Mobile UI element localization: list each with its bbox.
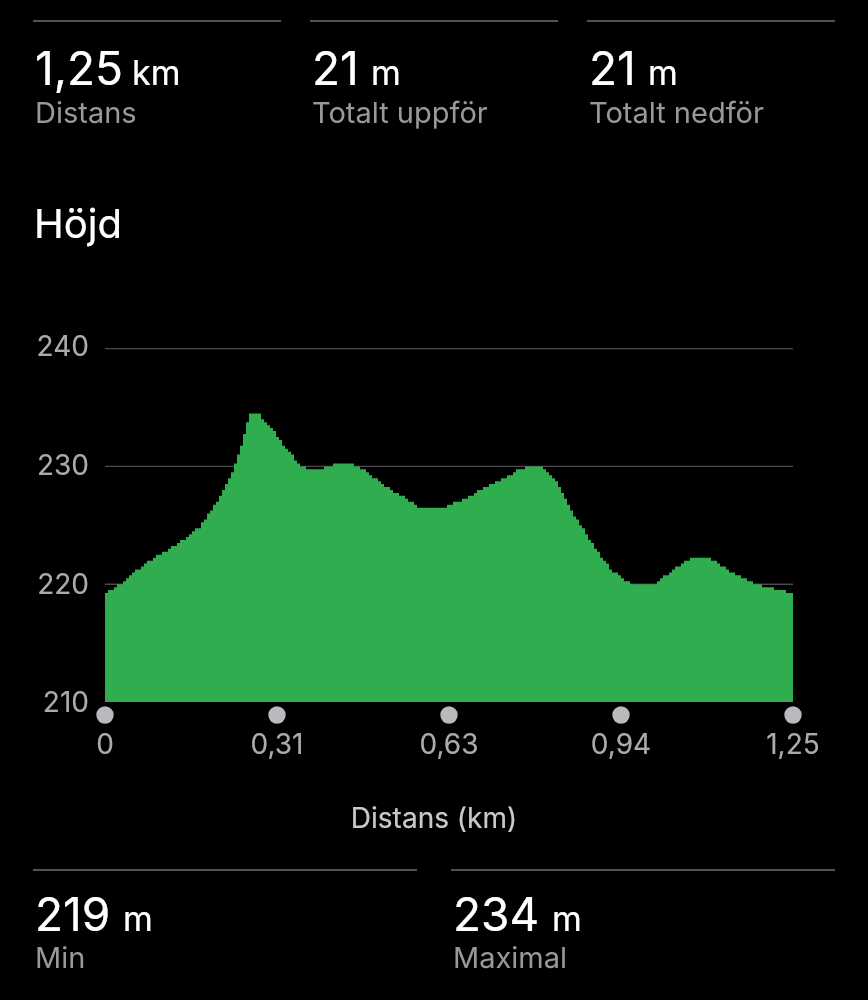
staticText: Distans (35, 95, 137, 130)
staticText: 230 (0, 448, 89, 482)
staticText: 21 (589, 40, 636, 96)
staticText: m (648, 52, 678, 93)
staticText: 1,25 (35, 40, 123, 96)
staticText: 210 (0, 685, 89, 719)
staticText: m (371, 52, 401, 93)
staticText: 0,31 (217, 727, 337, 761)
staticText: 21 (312, 40, 359, 96)
staticText: Maximal (453, 940, 568, 975)
staticText: 0,94 (561, 727, 681, 761)
staticText: 234 (453, 886, 540, 942)
staticText: 219 (35, 886, 111, 942)
staticText: Höjd (34, 199, 122, 247)
staticText: 220 (0, 567, 89, 601)
staticText: 0,63 (389, 727, 509, 761)
staticText: m (123, 898, 153, 939)
staticText: Min (35, 940, 86, 975)
staticText: Totalt uppför (312, 95, 488, 130)
staticText: 0 (45, 727, 165, 761)
staticText: m (552, 898, 582, 939)
staticText: km (132, 52, 181, 93)
staticText: Distans (km) (0, 801, 868, 835)
staticText: 1,25 (733, 727, 853, 761)
staticText: 240 (0, 329, 89, 363)
staticText: Totalt nedför (589, 95, 764, 130)
